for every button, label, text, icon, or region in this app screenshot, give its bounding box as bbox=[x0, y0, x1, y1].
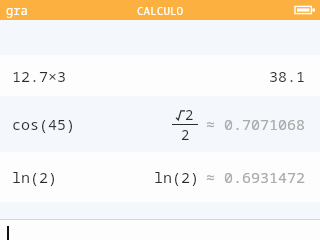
button[interactable]: 12.7×3 bbox=[0, 55, 320, 96]
button[interactable]: cos(45) bbox=[0, 96, 320, 152]
staticText: cos(45) bbox=[12, 114, 76, 134]
button[interactable]: gra bbox=[0, 2, 28, 18]
staticText: ln(2) bbox=[154, 167, 200, 187]
other: Battery bbox=[295, 5, 315, 15]
staticText: ≈ 0.6931472 bbox=[206, 167, 306, 187]
button[interactable]: Expression input bbox=[0, 220, 320, 240]
staticText: CALCULO bbox=[137, 3, 184, 18]
staticText: 38.1 bbox=[269, 66, 306, 86]
button[interactable]: ln(2) bbox=[0, 152, 320, 202]
staticText: 12.7×3 bbox=[12, 66, 67, 86]
staticText: ≈ 0.7071068 bbox=[206, 114, 306, 134]
staticText: 2 bbox=[185, 105, 194, 124]
staticText: ln(2) bbox=[12, 167, 58, 187]
staticText: 2 bbox=[181, 125, 190, 144]
